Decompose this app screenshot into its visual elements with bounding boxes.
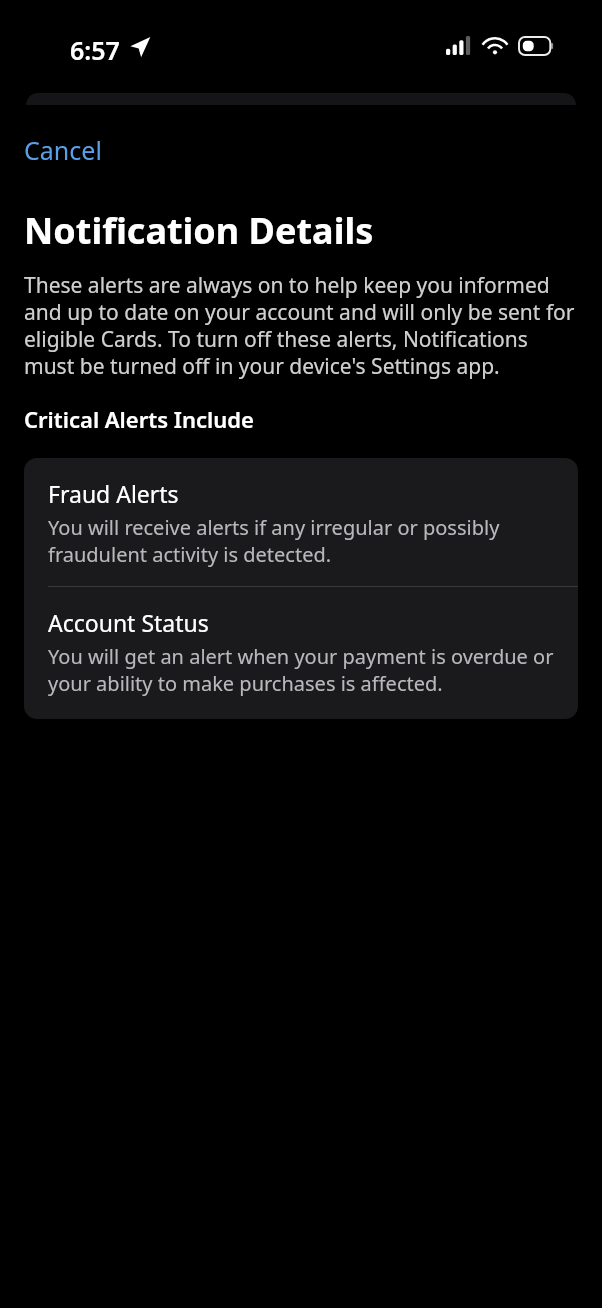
staticText: Notification Details [24,206,374,255]
staticText: Fraud Alerts [48,478,179,509]
staticText: You will get an alert when your payment … [48,643,556,697]
button[interactable]: Account Status [24,587,578,719]
staticText: 6:57 [70,33,120,67]
button[interactable]: Cancel [24,131,102,169]
staticText: Account Status [48,607,209,638]
button[interactable]: Fraud Alerts [24,458,578,586]
staticText: You will receive alerts if any irregular… [48,514,556,568]
staticText: Cancel [24,133,102,167]
staticText: These alerts are always on to help keep … [24,271,576,380]
staticText: Critical Alerts Include [24,404,254,434]
